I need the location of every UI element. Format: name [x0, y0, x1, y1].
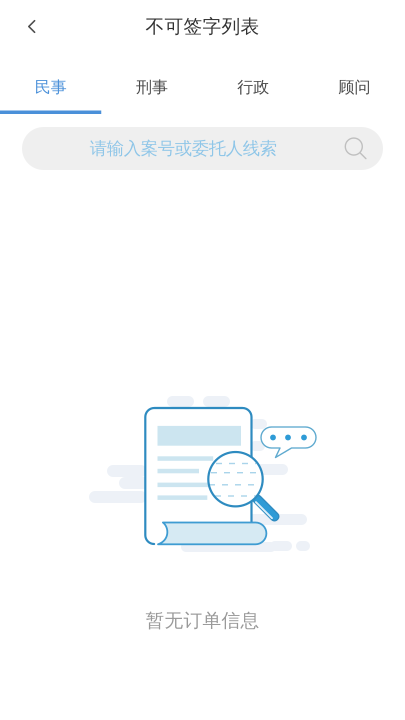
button[interactable]: Back [0, 4, 55, 49]
staticText: 刑事 [136, 77, 168, 97]
button[interactable]: 请输入案号或委托人线索 [22, 127, 383, 170]
staticText: 行政 [237, 77, 269, 97]
button[interactable]: 刑事 [101, 53, 202, 114]
staticText: 民事 [35, 77, 67, 97]
staticText: 顾问 [338, 77, 370, 97]
button[interactable]: 顾问 [304, 53, 405, 114]
staticText: 请输入案号或委托人线索 [90, 138, 277, 159]
staticText: 暂无订单信息 [145, 609, 259, 632]
button[interactable]: 行政 [202, 53, 304, 114]
staticText: 不可签字列表 [145, 15, 259, 38]
button[interactable]: 民事 [0, 53, 101, 114]
